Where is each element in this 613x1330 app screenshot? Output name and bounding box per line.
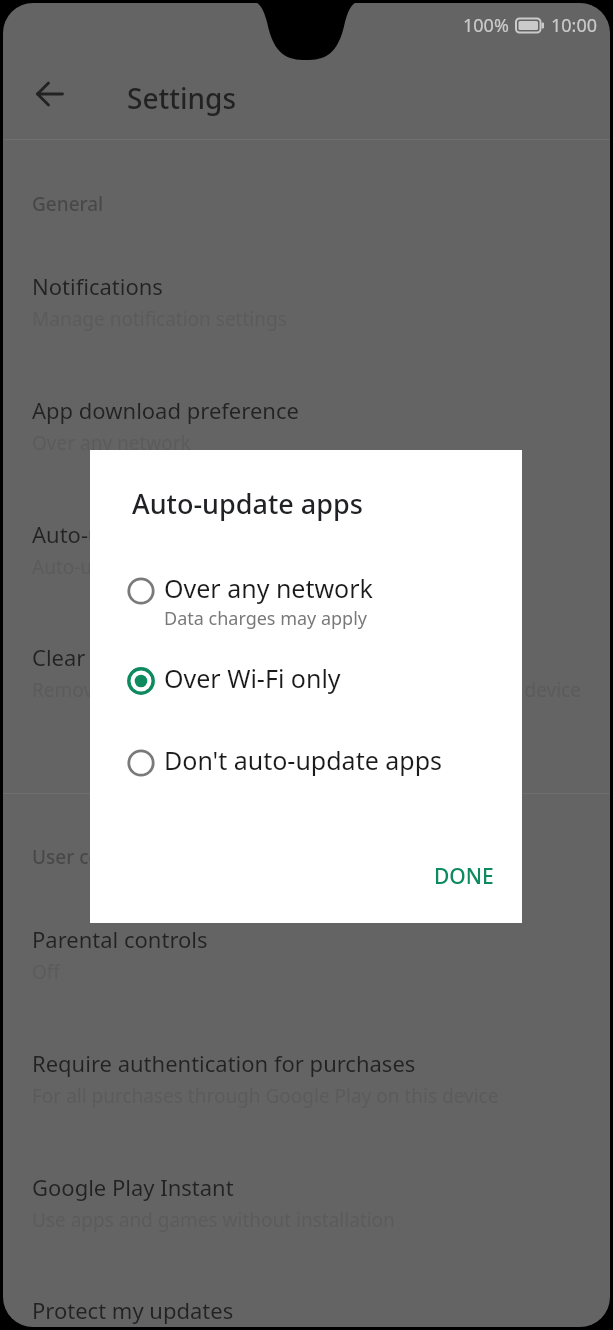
button[interactable]: App download preference bbox=[3, 395, 610, 456]
button[interactable]: Parental controls bbox=[3, 924, 610, 985]
staticText: Google Play Instant bbox=[32, 1172, 234, 1202]
staticText: Settings bbox=[127, 79, 237, 117]
staticText: 10:00 bbox=[551, 13, 598, 38]
button[interactable]: Don't auto-update apps bbox=[90, 746, 522, 780]
staticText: Auto-update apps bbox=[32, 519, 217, 549]
button[interactable]: Clear local search history bbox=[3, 642, 610, 703]
staticText: Remove all the searches you have perform… bbox=[32, 677, 581, 703]
staticText: DONE bbox=[434, 862, 494, 891]
staticText: General bbox=[32, 191, 104, 217]
button[interactable]: Protect my updates bbox=[3, 1295, 610, 1325]
staticText: Over any network bbox=[164, 571, 373, 605]
staticText: Over any network bbox=[32, 430, 191, 456]
staticText: Notifications bbox=[32, 271, 163, 301]
staticText: Clear local search history bbox=[32, 642, 290, 672]
button[interactable]: Notifications bbox=[3, 271, 610, 332]
staticText: Parental controls bbox=[32, 924, 208, 954]
button[interactable]: Require authentication for purchases bbox=[3, 1048, 610, 1109]
button[interactable]: DONE bbox=[406, 848, 522, 905]
button[interactable]: Over Wi-Fi only bbox=[90, 664, 522, 698]
staticText: Protect my updates bbox=[32, 1295, 234, 1325]
staticText: Auto-update apps over Wi-Fi only bbox=[32, 554, 328, 580]
staticText: Don't auto-update apps bbox=[164, 743, 443, 777]
button[interactable]: Auto-update apps bbox=[3, 519, 610, 580]
button[interactable]: Over any network bbox=[90, 574, 522, 634]
staticText: Over Wi-Fi only bbox=[164, 661, 341, 695]
staticText: Data charges may apply bbox=[164, 606, 368, 631]
button[interactable]: Back bbox=[29, 73, 71, 115]
staticText: App download preference bbox=[32, 395, 299, 425]
staticText: Require authentication for purchases bbox=[32, 1048, 416, 1078]
staticText: Off bbox=[32, 959, 60, 985]
staticText: User controls bbox=[32, 844, 153, 870]
staticText: 100% bbox=[463, 13, 509, 38]
button[interactable]: Google Play Instant bbox=[3, 1172, 610, 1233]
staticText: Auto-update apps bbox=[132, 485, 363, 522]
